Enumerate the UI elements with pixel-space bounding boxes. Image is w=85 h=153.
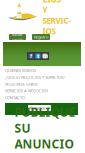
- button[interactable]: CONTACTO: [5, 94, 81, 101]
- staticText: in: [42, 52, 47, 60]
- staticText: SERVICIOS A NEGOCIOS: [5, 88, 48, 93]
- staticText: QUIENES SOMOS: [5, 68, 36, 73]
- staticText: SU ANUNCIO: [14, 120, 73, 152]
- button[interactable]: REGISTRESE GRATIS: [5, 81, 81, 87]
- button[interactable]: Facebook: [28, 53, 33, 58]
- staticText: PUBLIQUE: [14, 104, 75, 120]
- button[interactable]: Iniciar sesión: [9, 34, 26, 40]
- staticText: f: [30, 52, 32, 60]
- button[interactable]: ¿QUE ES NEGOCIOS Y SERVICIOS?: [5, 74, 81, 81]
- button[interactable]: SERVICIOS A NEGOCIOS: [5, 87, 81, 94]
- button[interactable]: QUIENES SOMOS: [5, 67, 81, 74]
- staticText: Registro: [34, 34, 48, 40]
- staticText: ¿QUE ES NEGOCIOS Y SERVICIOS?: [5, 74, 65, 80]
- staticText: Iniciar sesión: [12, 32, 23, 42]
- staticText: CONTACTO: [5, 95, 25, 100]
- button[interactable]: Twitter: [35, 53, 40, 58]
- button[interactable]: Registro: [32, 34, 50, 40]
- staticText: REGISTRESE GRATIS: [5, 81, 38, 87]
- button[interactable]: Negocios: [28, 105, 51, 111]
- staticText: NEGOCIOS: [42, 0, 68, 5]
- staticText: t: [37, 52, 39, 60]
- button[interactable]: LinkedIn: [42, 53, 47, 58]
- staticText: ▾: [47, 106, 49, 110]
- staticText: Negocios: [29, 105, 45, 111]
- staticText: Y SERVICIOS: [42, 5, 71, 37]
